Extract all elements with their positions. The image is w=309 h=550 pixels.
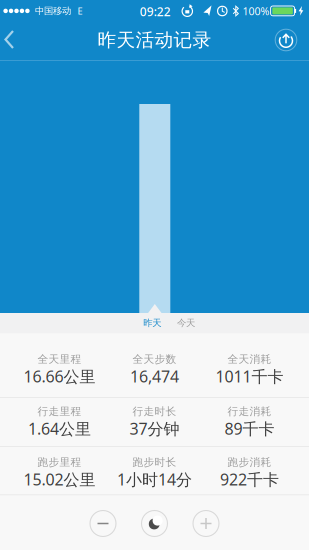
staticText: 中国移动 [35, 5, 71, 17]
button[interactable] [274, 28, 297, 51]
staticText: 100% [242, 4, 269, 18]
staticText: 行走消耗 [227, 405, 271, 418]
button[interactable] [192, 510, 219, 537]
staticText: 全天里程 [37, 353, 81, 366]
staticText: 37分钟 [129, 418, 179, 439]
button[interactable]: 昨天 [135, 313, 169, 333]
staticText: 全天步数 [132, 353, 176, 366]
staticText: 全天消耗 [227, 353, 271, 366]
staticText: 今天 [177, 317, 195, 329]
staticText: 16.66公里 [23, 366, 95, 387]
staticText: 1011千卡 [215, 366, 283, 387]
button[interactable]: 今天 [169, 313, 203, 333]
staticText: 1小时14分 [117, 469, 192, 490]
button[interactable] [0, 25, 22, 54]
staticText: 16,474 [130, 366, 179, 387]
staticText: 89千卡 [224, 418, 274, 439]
staticText: E [77, 5, 82, 17]
button[interactable] [141, 510, 168, 537]
button[interactable] [89, 510, 116, 537]
staticText: 跑步里程 [37, 455, 81, 469]
staticText: 昨天 [143, 317, 161, 329]
staticText: 1.64公里 [28, 418, 91, 439]
staticText: 15.02公里 [23, 469, 95, 490]
staticText: 922千卡 [220, 469, 279, 490]
staticText: 行走时长 [132, 405, 176, 418]
staticText: 09:22 [140, 3, 171, 19]
staticText: 跑步时长 [132, 455, 176, 469]
staticText: 行走里程 [37, 405, 81, 418]
staticText: 昨天活动记录 [97, 28, 211, 51]
staticText: 跑步消耗 [227, 455, 271, 469]
